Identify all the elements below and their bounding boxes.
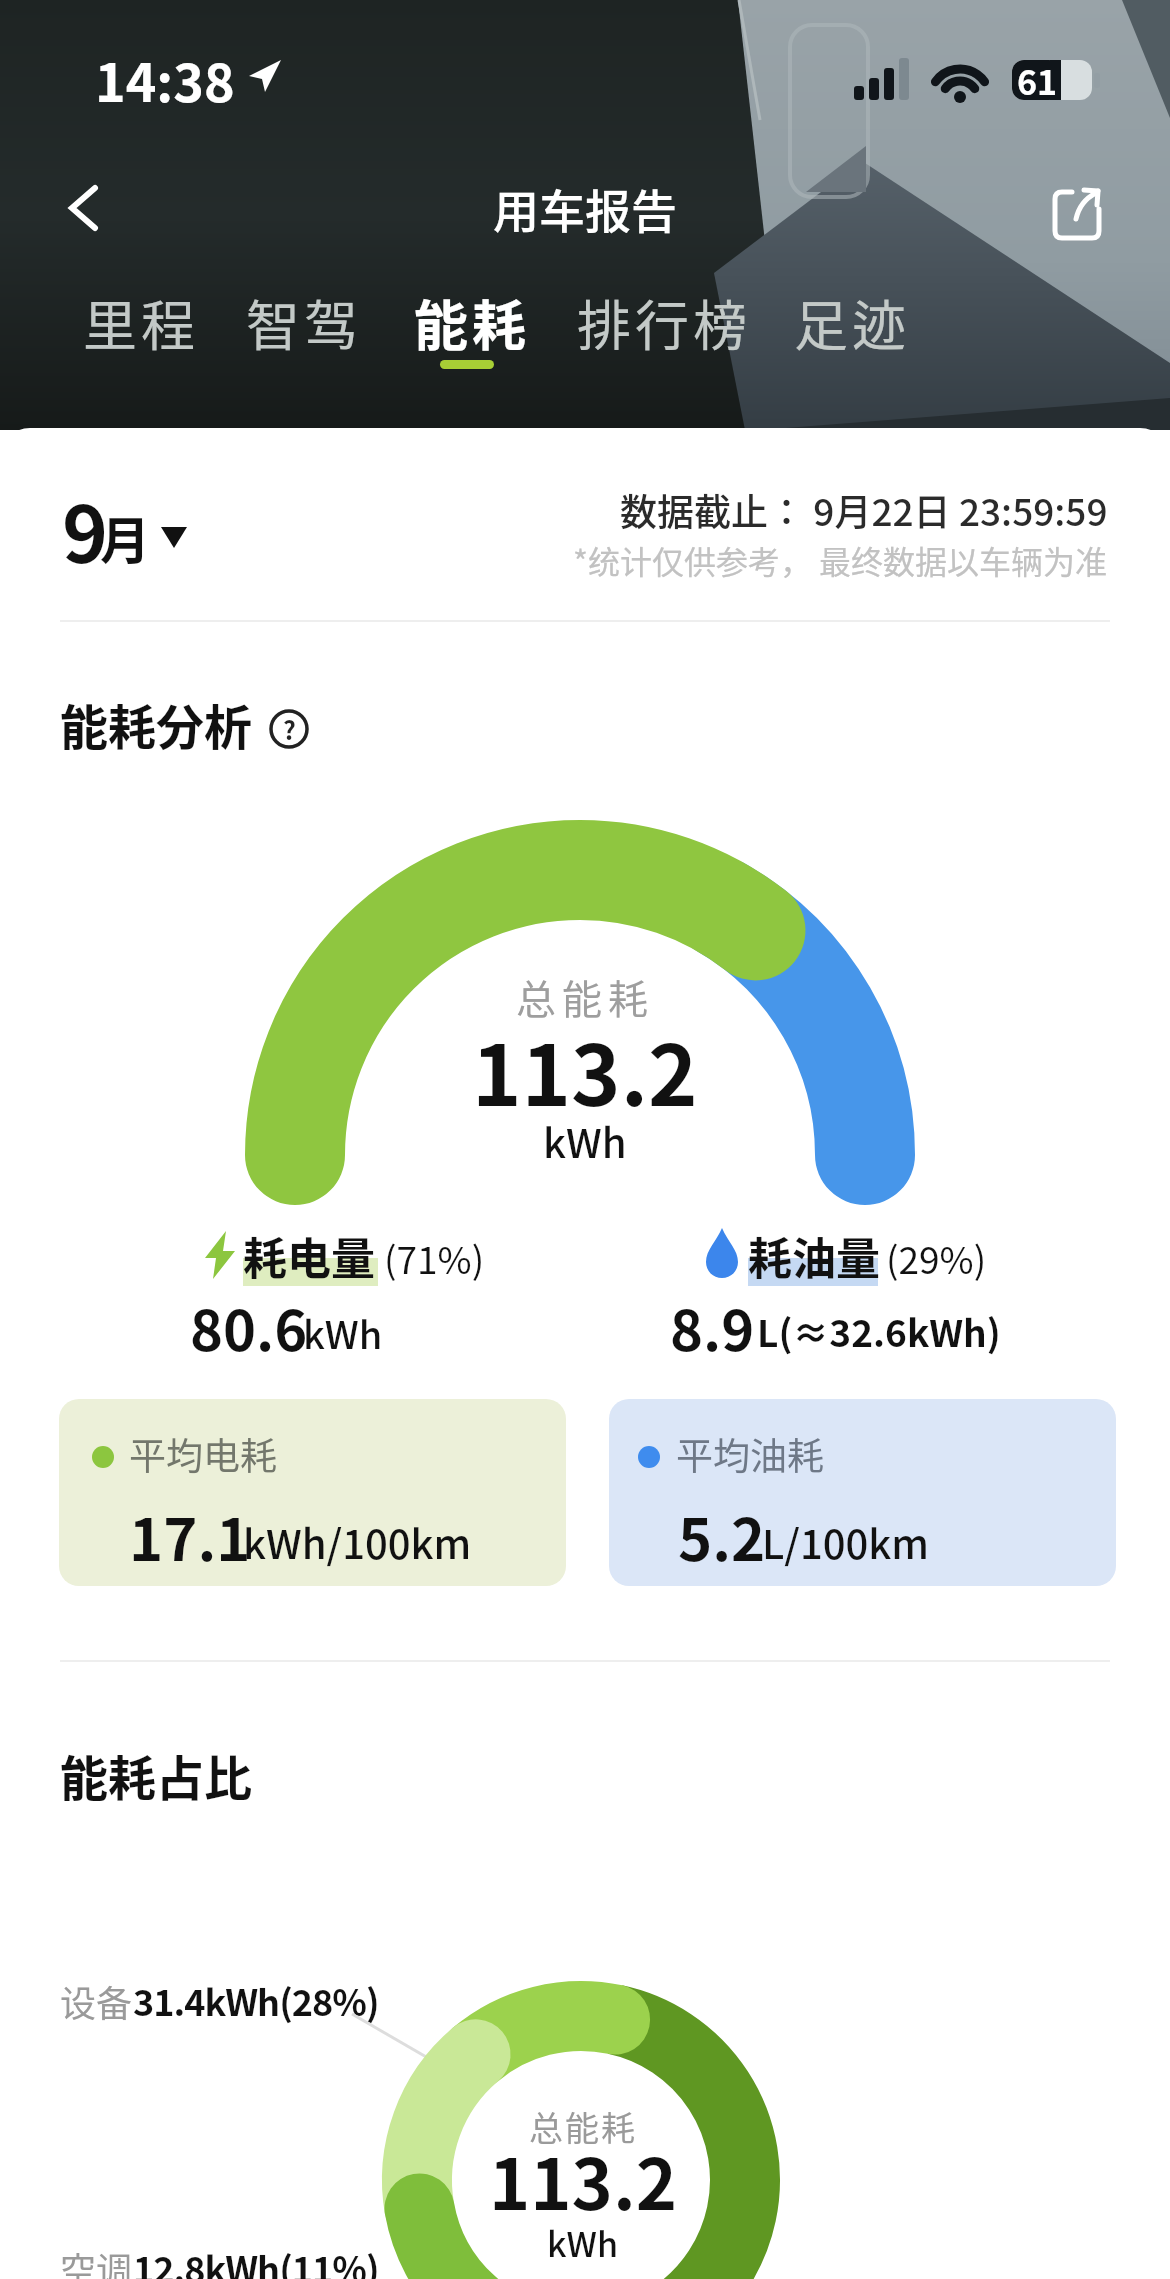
staticText: 8.9 — [670, 1286, 755, 1367]
button[interactable]: 能耗 — [402, 276, 518, 376]
staticText: 31.4kWh(28%) — [133, 1974, 379, 2026]
staticText: (71%) — [384, 1231, 485, 1285]
staticText: 用车报告 — [493, 175, 677, 242]
staticText: 里程 — [83, 283, 199, 361]
button[interactable] — [1040, 175, 1110, 245]
button[interactable] — [50, 178, 110, 238]
staticText: L(≈32.6kWh) — [757, 1304, 1001, 1358]
staticText: 能耗占比 — [60, 1740, 253, 1810]
staticText: ? — [283, 711, 296, 747]
staticText: 12.8kWh(11%) — [133, 2241, 379, 2279]
button[interactable]: 足迹 — [782, 276, 898, 376]
staticText: 总能耗 — [529, 2102, 637, 2151]
staticText: 能耗分析 — [60, 689, 253, 759]
button[interactable]: 9 — [55, 465, 215, 580]
staticText: 智驾 — [246, 283, 362, 361]
staticText: 空调 — [60, 2242, 133, 2279]
staticText: L/100km — [762, 1513, 930, 1571]
staticText: 平均油耗 — [676, 1427, 824, 1481]
staticText: 耗电量 — [243, 1224, 375, 1288]
staticText: 14:38 — [95, 42, 235, 117]
button[interactable]: 排行榜 — [565, 276, 739, 376]
staticText: kWh/100km — [243, 1513, 472, 1571]
staticText: (29%) — [886, 1231, 987, 1285]
staticText: 113.2 — [489, 2129, 677, 2230]
staticText: 总能耗 — [516, 968, 654, 1026]
staticText: kWh — [543, 1112, 627, 1170]
button[interactable]: 智驾 — [234, 276, 350, 376]
staticText: kWh — [547, 2218, 619, 2267]
staticText: 耗油量 — [748, 1224, 880, 1288]
staticText: 17.1 — [129, 1494, 251, 1578]
staticText: 113.2 — [472, 1009, 698, 1131]
staticText: 足迹 — [794, 283, 910, 361]
staticText: 能耗 — [414, 283, 530, 361]
staticText: 80.6 — [190, 1286, 308, 1367]
staticText: 5.2 — [678, 1494, 766, 1578]
staticText: 月 — [100, 501, 150, 573]
staticText: 设备 — [60, 1975, 133, 2027]
staticText: 数据截止： 9月22日 23:59:59 — [620, 483, 1108, 537]
button[interactable]: 里程 — [71, 276, 187, 376]
staticText: 9 — [62, 473, 109, 586]
staticText: 平均电耗 — [129, 1427, 277, 1481]
staticText: kWh — [303, 1305, 383, 1360]
staticText: 61 — [1017, 56, 1058, 105]
staticText: *统计仅供参考， 最终数据以车辆为准 — [573, 537, 1108, 583]
staticText: 排行榜 — [577, 283, 751, 361]
button[interactable]: ? — [268, 708, 310, 750]
button[interactable]: 平均油耗 — [609, 1399, 1116, 1586]
button[interactable]: 平均电耗 — [59, 1399, 566, 1586]
